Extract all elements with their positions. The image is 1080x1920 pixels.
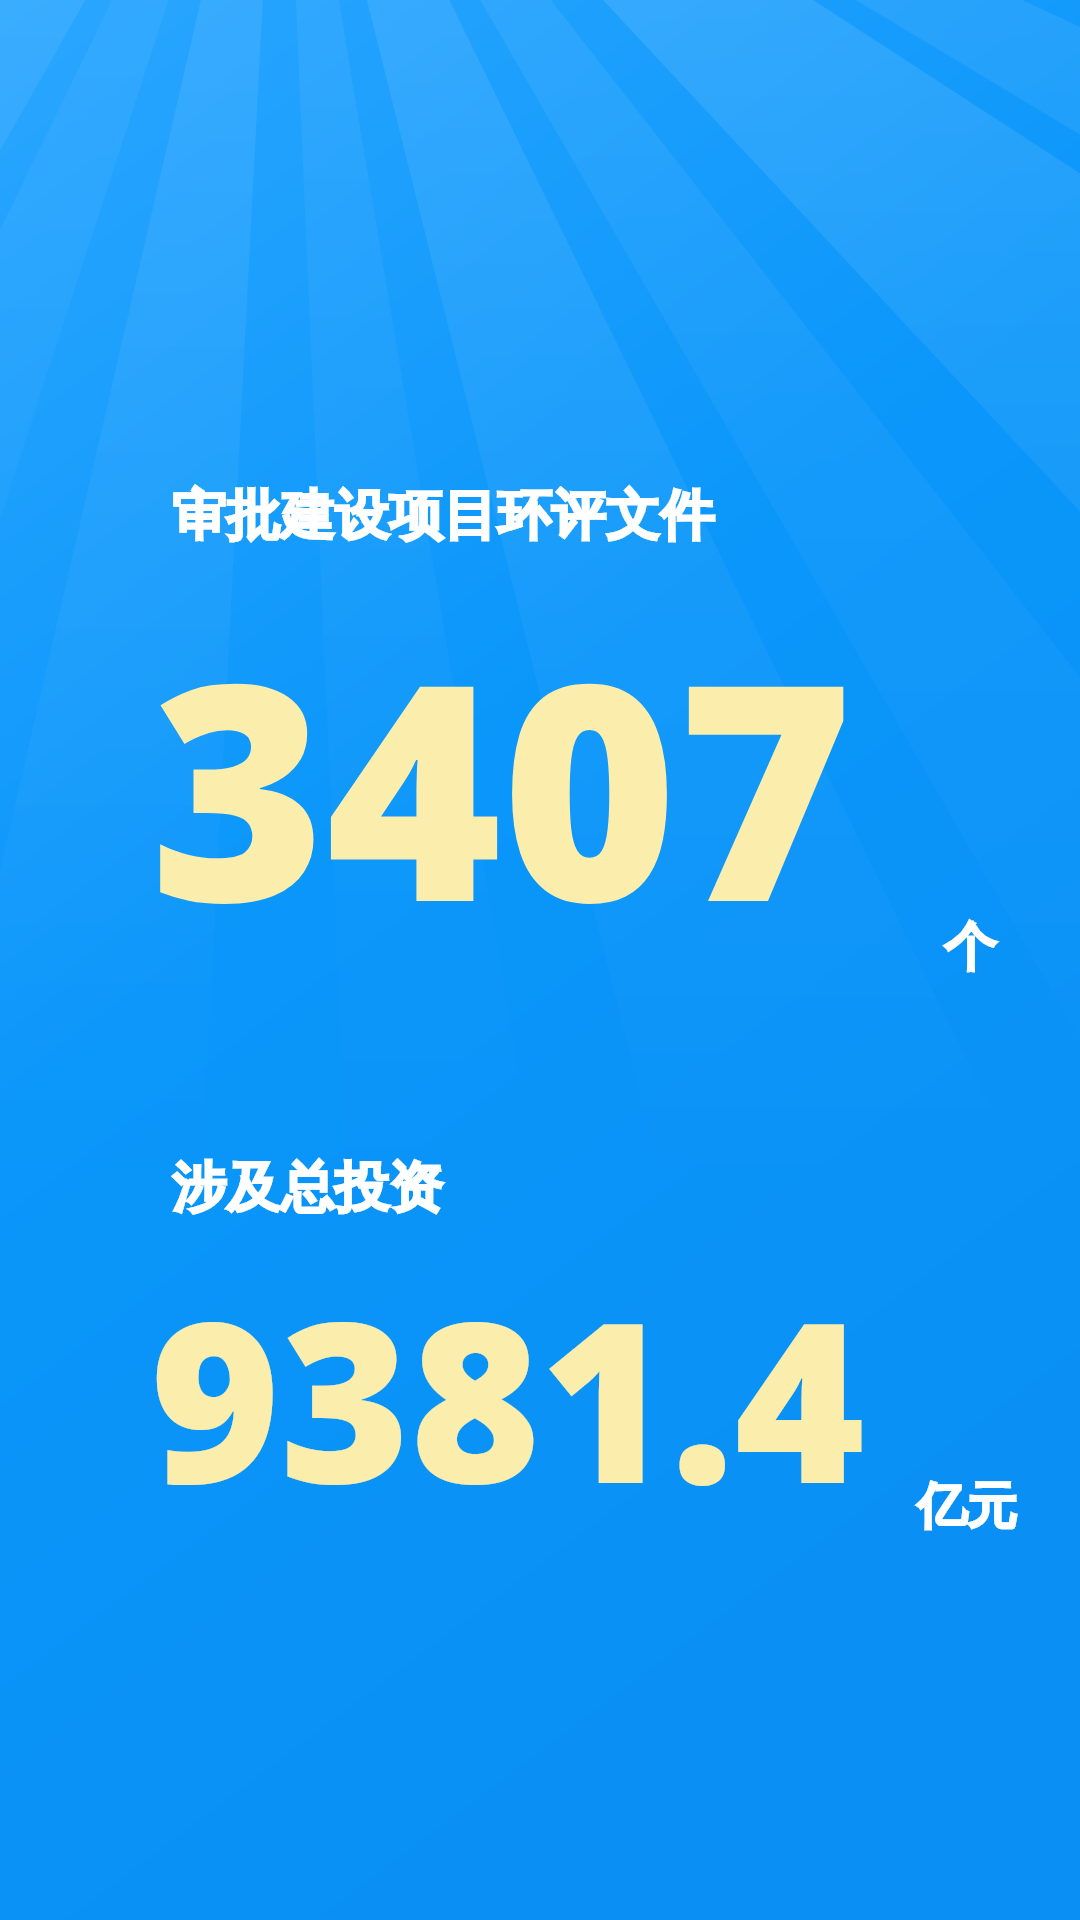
staticText: 9381.4 <box>150 1246 865 1548</box>
staticText: 3407 <box>150 580 854 989</box>
button[interactable]: 审批建设项目环评文件 <box>172 482 714 550</box>
staticText: 涉及总投资 <box>172 1154 443 1222</box>
staticText: 个 <box>944 915 996 981</box>
staticText: 审批建设项目环评文件 <box>172 482 714 550</box>
button[interactable]: 涉及总投资 <box>172 1154 443 1222</box>
staticText: 亿元 <box>917 1475 1017 1538</box>
